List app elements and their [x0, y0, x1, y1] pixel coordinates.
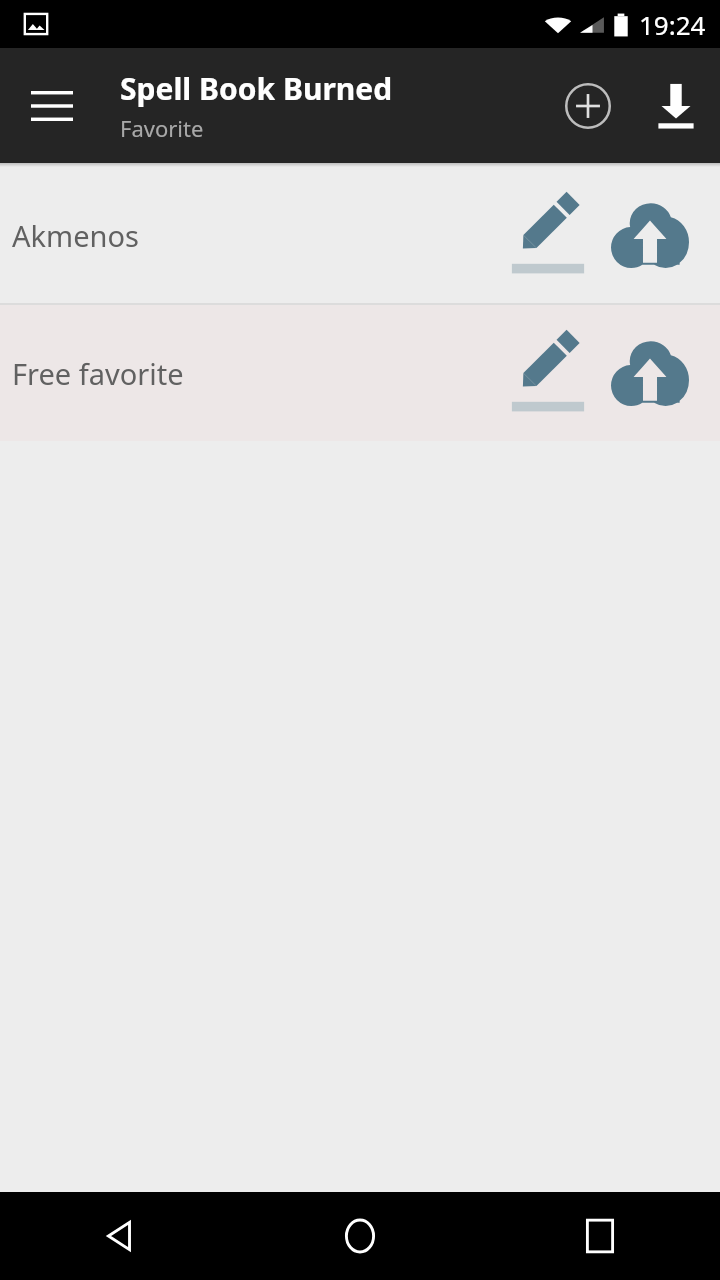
staticText: Favorite — [120, 113, 204, 143]
button[interactable]: Add — [550, 68, 626, 144]
button[interactable]: Open navigation menu — [16, 70, 88, 142]
button[interactable]: Edit — [500, 318, 596, 428]
button[interactable]: Upload — [602, 180, 698, 290]
button[interactable]: Edit — [500, 180, 596, 290]
button[interactable]: Download — [638, 68, 714, 144]
staticText: 19:24 — [639, 7, 706, 42]
staticText: Spell Book Burned — [120, 68, 393, 109]
button[interactable]: Home — [240, 1192, 480, 1280]
button[interactable]: Back — [0, 1192, 240, 1280]
button[interactable]: Upload — [602, 318, 698, 428]
staticText: Free favorite — [12, 354, 184, 393]
button[interactable]: Akmenos — [0, 167, 720, 303]
button[interactable]: Recent apps — [480, 1192, 720, 1280]
staticText: Akmenos — [12, 216, 139, 255]
button[interactable]: Free favorite — [0, 305, 720, 441]
